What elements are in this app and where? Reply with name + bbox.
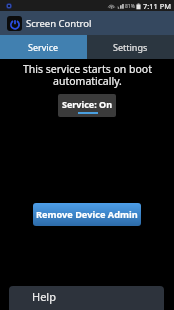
button[interactable]: Help	[9, 286, 164, 310]
staticText: Help	[32, 289, 56, 304]
staticText: 7:11 PM	[143, 1, 172, 11]
staticText: 81%	[125, 3, 135, 10]
button[interactable]: Service	[0, 35, 87, 59]
staticText: This service starts on boot automaticall…	[23, 62, 152, 88]
staticText: Screen Control	[26, 17, 92, 30]
staticText: Settings	[113, 41, 148, 53]
staticText: Remove Device Admin	[36, 208, 138, 221]
button[interactable]: Remove Device Admin	[33, 203, 141, 226]
staticText: Service	[28, 41, 59, 53]
staticText: Service: On	[62, 98, 113, 110]
button[interactable]: Service: On	[58, 94, 116, 117]
button[interactable]: Settings	[87, 35, 174, 59]
